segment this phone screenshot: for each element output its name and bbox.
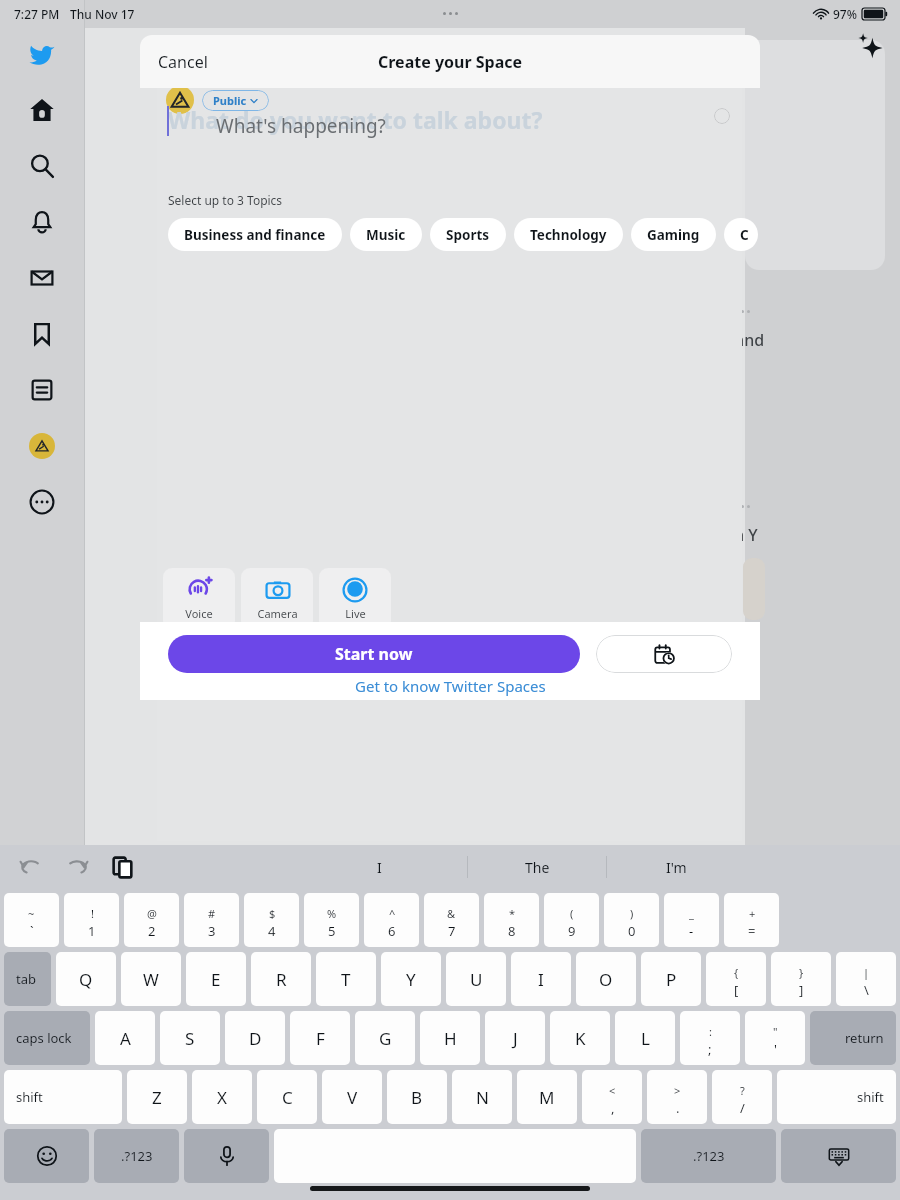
button[interactable]: .?123 [641,1129,776,1183]
button[interactable]: tab [4,952,51,1006]
button[interactable]: Gaming [631,218,716,251]
button[interactable]: Sports [430,218,506,251]
button[interactable]: Emoji [4,1129,89,1183]
button[interactable]: Camera [241,568,313,630]
button[interactable]: Twitter [14,26,70,82]
button[interactable]: Y [381,952,441,1006]
staticText: .?123 [693,1147,725,1165]
button[interactable]: # [184,893,239,947]
button[interactable]: } [771,952,831,1006]
button[interactable]: R [251,952,311,1006]
button[interactable]: D [225,1011,285,1065]
button[interactable]: L [615,1011,675,1065]
button[interactable]: G [355,1011,415,1065]
button[interactable]: ) [604,893,659,947]
button[interactable]: Undo [18,854,44,880]
button[interactable]: .?123 [94,1129,179,1183]
button[interactable]: Paste [110,854,136,880]
staticText: : [709,1024,712,1039]
button[interactable]: % [304,893,359,947]
button[interactable]: Sparkle [855,30,885,60]
button[interactable]: Redo [64,854,90,880]
button[interactable]: A [95,1011,155,1065]
button[interactable]: Q [56,952,116,1006]
button[interactable]: M [517,1070,577,1124]
button[interactable]: More [14,474,70,530]
button[interactable]: O [576,952,636,1006]
button[interactable]: { [706,952,766,1006]
button[interactable]: W [121,952,181,1006]
button[interactable]: < [582,1070,642,1124]
button[interactable]: U [446,952,506,1006]
button[interactable]: $ [244,893,299,947]
button[interactable]: Technology [514,218,623,251]
button[interactable]: Schedule Space [596,635,732,673]
button[interactable]: I [292,852,467,882]
staticText: 97% [833,6,857,22]
button[interactable]: Search [14,138,70,194]
button[interactable]: Business and finance [168,218,342,251]
button[interactable]: Notifications [14,194,70,250]
button[interactable]: Public [202,90,269,111]
button[interactable]: Voice Recording [163,568,235,630]
button[interactable]: S [160,1011,220,1065]
button[interactable]: ? [712,1070,772,1124]
button[interactable]: E [186,952,246,1006]
staticText: Z [152,1086,162,1109]
button[interactable]: + [724,893,779,947]
button[interactable]: Cancel [146,45,220,79]
button[interactable]: Dictation [184,1129,269,1183]
staticText: 8 [508,922,516,940]
staticText: 7:27 PM [14,6,60,22]
staticText: I [538,968,544,991]
button[interactable]: Z [127,1070,187,1124]
button[interactable]: " [745,1011,805,1065]
button[interactable]: | [836,952,896,1006]
button[interactable]: I [511,952,571,1006]
button[interactable]: V [322,1070,382,1124]
button[interactable]: shift [4,1070,122,1124]
button[interactable]: shift [777,1070,896,1124]
button[interactable]: return [810,1011,896,1065]
button[interactable]: I'm [607,852,745,882]
button[interactable]: T [316,952,376,1006]
button[interactable]: Live [319,568,391,630]
button[interactable]: > [647,1070,707,1124]
button[interactable]: ^ [364,893,419,947]
button[interactable]: Profile [14,418,70,474]
button[interactable]: J [485,1011,545,1065]
button[interactable]: N [452,1070,512,1124]
staticText: I'm [666,858,687,877]
button[interactable]: : [680,1011,740,1065]
button[interactable]: Lists [14,362,70,418]
button[interactable]: B [387,1070,447,1124]
button[interactable]: Hide keyboard [781,1129,896,1183]
button[interactable]: Start now [168,635,580,673]
button[interactable]: Bookmarks [14,306,70,362]
button[interactable]: H [420,1011,480,1065]
button[interactable]: The [468,852,606,882]
button[interactable]: P [641,952,701,1006]
button[interactable]: & [424,893,479,947]
staticText: ) [630,906,634,921]
button[interactable]: _ [664,893,719,947]
button[interactable]: ~ [4,893,59,947]
button[interactable]: * [484,893,539,947]
button[interactable]: K [550,1011,610,1065]
staticText: Live [345,606,366,621]
button[interactable]: C [724,218,758,251]
button[interactable]: X [192,1070,252,1124]
button[interactable]: Home [14,82,70,138]
button[interactable]: Get to know Twitter Spaces [355,676,546,696]
button[interactable]: caps lock [4,1011,90,1065]
button[interactable]: F [290,1011,350,1065]
button[interactable]: ( [544,893,599,947]
button[interactable]: ! [64,893,119,947]
button[interactable]: @ [124,893,179,947]
button[interactable]: Music [350,218,422,251]
staticText: > [674,1083,681,1098]
staticText: { [734,965,739,980]
button[interactable]: C [257,1070,317,1124]
button[interactable]: Messages [14,250,70,306]
